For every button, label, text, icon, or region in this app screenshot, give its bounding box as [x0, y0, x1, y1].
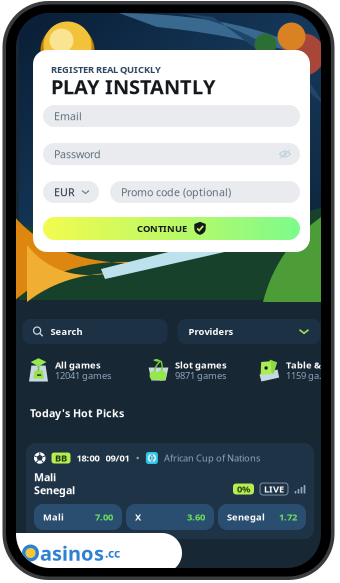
button[interactable]: EUR	[43, 181, 99, 203]
staticText: 0%	[237, 483, 250, 495]
staticText: X	[135, 511, 141, 523]
button[interactable]: Mali	[34, 504, 122, 530]
staticText: Today's Hot Picks	[30, 406, 124, 420]
staticText: African Cup of Nations	[164, 452, 260, 464]
staticText: Senegal	[227, 511, 265, 523]
staticText: Senegal	[34, 483, 75, 497]
staticText: CONTINUE	[137, 222, 187, 235]
staticText: BB	[55, 452, 67, 464]
staticText: LIVE	[264, 483, 284, 495]
staticText: REGISTER REAL QUICKLY	[51, 63, 161, 76]
staticText: 7.00	[95, 511, 113, 523]
button[interactable]: Search	[22, 319, 167, 344]
staticText: Email	[54, 109, 82, 123]
staticText: PLAY INSTANTLY	[51, 73, 216, 100]
button[interactable]: Email	[43, 105, 300, 127]
button[interactable]: Slot games	[148, 357, 259, 383]
staticText: 9871 games	[175, 369, 226, 382]
staticText: .cc	[105, 545, 120, 561]
staticText: Password	[54, 147, 101, 161]
staticText: 1.72	[279, 511, 297, 523]
staticText: Table & Cras	[286, 359, 333, 371]
button[interactable]: Senegal	[218, 504, 306, 530]
button[interactable]: X	[126, 504, 214, 530]
staticText: 18:00	[76, 452, 99, 464]
staticText: Mali	[43, 511, 64, 523]
button[interactable]: Password	[43, 143, 300, 165]
button[interactable]: Promo code (optional)	[110, 181, 300, 203]
staticText: 1159 games	[286, 369, 333, 382]
button[interactable]: Providers	[177, 319, 320, 344]
staticText: Search	[50, 325, 82, 338]
staticText: Mali	[34, 470, 56, 484]
button[interactable]: Table & Cras	[259, 357, 339, 383]
staticText: asinos	[40, 540, 104, 566]
button[interactable]: All games	[28, 357, 148, 383]
staticText: 12041 games	[55, 369, 111, 382]
button[interactable]: CONTINUE	[43, 217, 300, 240]
staticText: Providers	[188, 325, 233, 338]
staticText: 09/01	[105, 452, 129, 464]
staticText: 3.60	[187, 511, 205, 523]
staticText: All games	[55, 359, 101, 371]
staticText: EUR	[54, 185, 75, 199]
staticText: Slot games	[175, 359, 227, 371]
staticText: Promo code (optional)	[121, 185, 231, 199]
